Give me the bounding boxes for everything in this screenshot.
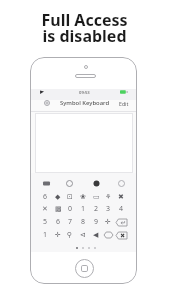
- staticText: Edit: [119, 100, 129, 107]
- button[interactable]: Category 3: [90, 177, 102, 189]
- staticText: 0: [68, 204, 73, 214]
- button[interactable]: ✖: [115, 191, 127, 203]
- staticText: ✛: [105, 218, 111, 226]
- button[interactable]: 7: [64, 216, 76, 228]
- button[interactable]: 0: [64, 203, 76, 215]
- button[interactable]: ✛: [52, 229, 64, 241]
- button[interactable]: Settings: [42, 98, 52, 108]
- button[interactable]: 9: [90, 216, 102, 228]
- staticText: 7: [68, 217, 73, 227]
- button[interactable]: Category 1: [40, 177, 52, 189]
- staticText: 09:53: [79, 90, 90, 96]
- staticText: ✖: [118, 193, 124, 201]
- staticText: 2: [94, 204, 99, 214]
- button[interactable]: [115, 216, 127, 228]
- staticText: 8: [81, 217, 86, 227]
- button[interactable]: 2: [90, 203, 102, 215]
- staticText: 1: [81, 204, 86, 214]
- button[interactable]: ⊲: [77, 229, 89, 241]
- button[interactable]: 5: [39, 216, 51, 228]
- button[interactable]: 6: [52, 216, 64, 228]
- button[interactable]: ⚘: [102, 191, 114, 203]
- staticText: 9: [94, 217, 99, 227]
- button[interactable]: ◆: [52, 191, 64, 203]
- button[interactable]: Edit: [117, 98, 130, 108]
- staticText: 6: [43, 192, 48, 202]
- button[interactable]: [115, 229, 127, 241]
- button[interactable]: ❀: [77, 191, 89, 203]
- button[interactable]: 8: [77, 216, 89, 228]
- button[interactable]: 4: [115, 203, 127, 215]
- staticText: Symbol Keyboard: [60, 99, 110, 107]
- staticText: 1: [43, 230, 48, 240]
- button[interactable]: 1: [39, 229, 51, 241]
- staticText: ◆: [55, 193, 61, 201]
- button[interactable]: 6: [39, 191, 51, 203]
- staticText: ⚘: [105, 193, 112, 201]
- button[interactable]: ▭: [90, 191, 102, 203]
- staticText: is disabled: [42, 25, 127, 47]
- staticText: ⊡: [67, 193, 73, 201]
- button[interactable]: 3: [102, 203, 114, 215]
- staticText: Full Access: [41, 9, 128, 31]
- staticText: 4: [119, 204, 124, 214]
- staticText: ▭: [93, 193, 100, 201]
- button[interactable]: ✕: [39, 203, 51, 215]
- staticText: ▩: [55, 205, 62, 213]
- button[interactable]: ◀: [90, 229, 102, 241]
- button[interactable]: ▩: [52, 203, 64, 215]
- button[interactable]: ✛: [102, 216, 114, 228]
- staticText: 6: [56, 217, 61, 227]
- staticText: ❀: [80, 193, 86, 201]
- button[interactable]: ⊡: [64, 191, 76, 203]
- staticText: ⊲: [80, 231, 86, 239]
- staticText: ◀: [93, 231, 99, 239]
- staticText: ⚲: [67, 231, 73, 239]
- button[interactable]: Category 4: [115, 177, 127, 189]
- button[interactable]: [102, 229, 114, 241]
- button[interactable]: 1: [77, 203, 89, 215]
- staticText: 5: [43, 217, 48, 227]
- staticText: ✕: [42, 205, 48, 213]
- button[interactable]: Category 2: [63, 177, 75, 189]
- staticText: ✛: [55, 231, 61, 239]
- button[interactable]: ⚲: [64, 229, 76, 241]
- staticText: 3: [106, 204, 111, 214]
